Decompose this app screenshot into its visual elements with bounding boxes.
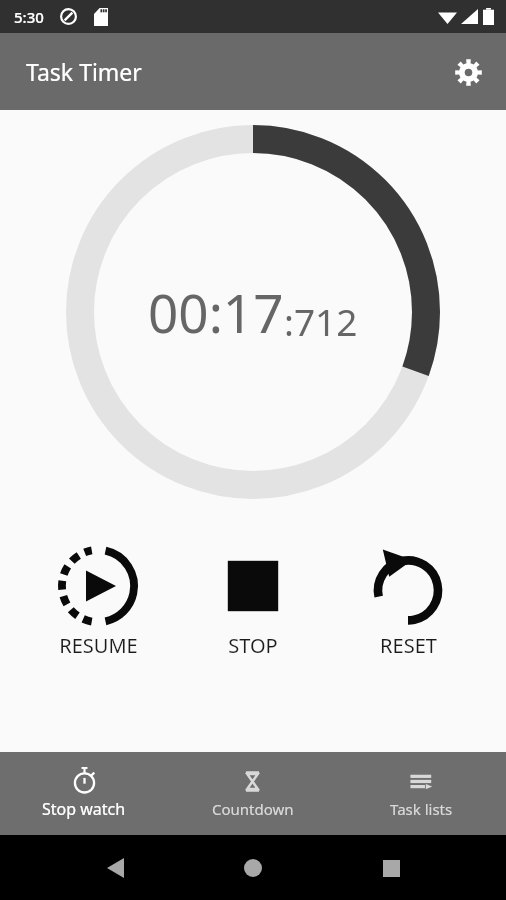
button[interactable]: Settings <box>444 48 492 96</box>
button[interactable]: Recents <box>368 845 414 891</box>
staticText: Task Timer <box>26 56 142 87</box>
staticText: 5:30 <box>14 7 44 27</box>
staticText: :712 <box>284 296 358 346</box>
button[interactable]: Stop watch <box>0 752 168 835</box>
button[interactable]: Home <box>230 845 276 891</box>
staticText: RESUME <box>59 632 138 659</box>
button[interactable]: Task lists <box>337 752 506 835</box>
button[interactable]: Countdown <box>168 752 337 835</box>
staticText: RESET <box>380 632 437 659</box>
button[interactable]: RESUME <box>31 543 165 662</box>
button[interactable]: Back <box>92 845 138 891</box>
staticText: 00:17 <box>148 276 284 348</box>
staticText: Countdown <box>212 799 294 819</box>
button[interactable]: RESET <box>341 543 475 662</box>
staticText: Task lists <box>390 799 453 819</box>
staticText: STOP <box>228 632 278 659</box>
staticText: Stop watch <box>42 798 126 820</box>
button[interactable]: STOP <box>186 543 320 662</box>
